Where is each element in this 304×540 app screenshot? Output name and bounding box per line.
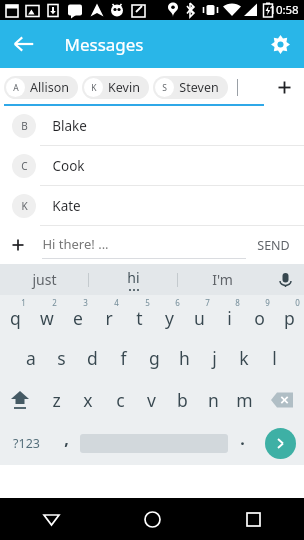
button[interactable]: 1 (0, 295, 31, 337)
button[interactable]: a (15, 337, 46, 379)
staticText: q (10, 306, 21, 330)
staticText: ?123 (13, 435, 40, 452)
staticText: I'm (212, 270, 233, 289)
button[interactable]: m (229, 379, 260, 421)
staticText: Blake (52, 117, 87, 135)
button[interactable]: Home (102, 498, 203, 540)
button[interactable]: Back (0, 498, 102, 540)
button[interactable]: 4 (93, 295, 124, 337)
button[interactable]: K (82, 76, 149, 99)
button[interactable]: k (229, 337, 259, 379)
button[interactable]: n (198, 379, 229, 421)
staticText: 7 (205, 297, 210, 308)
staticText: f (120, 346, 127, 370)
button[interactable]: Shift (0, 379, 40, 421)
staticText: Kevin (108, 79, 140, 96)
button[interactable]: h (169, 337, 199, 379)
staticText: 3 (83, 297, 88, 308)
button[interactable]: j (199, 337, 229, 379)
staticText: K (91, 82, 97, 94)
button[interactable]: l (259, 337, 289, 379)
button[interactable]: Backspace (260, 379, 304, 421)
button[interactable]: Recents (203, 498, 304, 540)
staticText: c (116, 388, 125, 412)
staticText: A (13, 82, 19, 94)
staticText: h (179, 346, 190, 370)
button[interactable]: C (0, 146, 304, 186)
staticText: . (240, 428, 245, 450)
staticText: Kate (52, 197, 81, 215)
staticText: 5 (145, 297, 150, 308)
button[interactable]: I'm (178, 264, 266, 295)
button[interactable]: Add attachment (0, 226, 36, 264)
staticText: Allison (30, 79, 69, 96)
button[interactable] (80, 421, 228, 465)
button[interactable]: Add recipient (264, 68, 304, 106)
button[interactable]: v (136, 379, 167, 421)
staticText: z (52, 388, 61, 412)
staticText: , (64, 428, 69, 450)
staticText: 0 (295, 297, 300, 308)
staticText: r (105, 306, 113, 330)
staticText: a (26, 346, 36, 370)
button[interactable]: Settings (256, 20, 304, 68)
staticText: 10:58 (269, 2, 299, 18)
button[interactable]: 7 (184, 295, 214, 337)
staticText: k (239, 346, 249, 370)
staticText: e (73, 306, 83, 330)
staticText: s (57, 346, 66, 370)
staticText: K (21, 199, 28, 213)
staticText: hi (127, 268, 140, 287)
button[interactable]: Voice input (266, 264, 304, 295)
staticText: v (147, 388, 156, 412)
button[interactable]: d (77, 337, 108, 379)
staticText: Cook (52, 157, 85, 175)
button[interactable]: Back (0, 20, 48, 68)
button[interactable]: 6 (154, 295, 184, 337)
staticText: 2 (52, 297, 57, 308)
staticText: b (177, 388, 188, 412)
staticText: Messages (64, 33, 144, 56)
button[interactable]: just (0, 264, 88, 295)
button[interactable]: B (0, 106, 304, 146)
button[interactable]: , (52, 421, 80, 465)
button[interactable]: s (46, 337, 77, 379)
staticText: l (272, 346, 277, 370)
button[interactable]: . (228, 421, 256, 465)
button[interactable]: Enter (256, 421, 304, 465)
button[interactable]: z (40, 379, 72, 421)
staticText: i (227, 306, 232, 330)
staticText: 9 (265, 297, 270, 308)
button[interactable]: SEND (243, 226, 304, 264)
staticText: 8 (235, 297, 240, 308)
button[interactable]: ?123 (0, 421, 52, 465)
button[interactable]: f (108, 337, 139, 379)
button[interactable]: S (153, 76, 228, 99)
staticText: d (87, 346, 98, 370)
button[interactable]: c (104, 379, 136, 421)
button[interactable]: A (4, 76, 78, 99)
button[interactable]: x (72, 379, 104, 421)
staticText: n (208, 388, 219, 412)
button[interactable]: 0 (274, 295, 304, 337)
button[interactable]: K (0, 186, 304, 226)
staticText: B (21, 119, 28, 133)
button[interactable]: 2 (31, 295, 62, 337)
button[interactable]: 9 (244, 295, 274, 337)
button[interactable]: b (167, 379, 198, 421)
staticText: x (83, 388, 93, 412)
staticText: C (21, 159, 28, 173)
button[interactable]: g (139, 337, 169, 379)
staticText: Steven (179, 79, 219, 96)
staticText: 1 (21, 297, 26, 308)
staticText: j (212, 346, 217, 370)
button[interactable]: 3 (62, 295, 93, 337)
button[interactable]: 8 (214, 295, 244, 337)
staticText: just (32, 270, 57, 289)
staticText: p (284, 306, 295, 330)
button[interactable]: hi (89, 264, 177, 295)
staticText: 4 (114, 297, 119, 308)
staticText: SEND (257, 237, 290, 254)
staticText: w (40, 306, 54, 330)
button[interactable]: 5 (124, 295, 154, 337)
